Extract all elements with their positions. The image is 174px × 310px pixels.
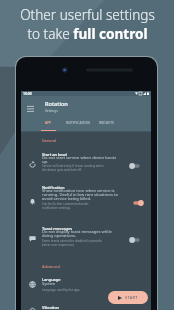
staticText: NOTIFICATION	[66, 121, 90, 125]
staticText: System	[42, 281, 56, 286]
button[interactable]: START	[108, 291, 148, 304]
staticText: Service will start only if it was runnin…	[42, 164, 104, 172]
button[interactable]	[22, 182, 150, 214]
button[interactable]: WIDGETS	[92, 121, 121, 132]
staticText: Other userful settings	[20, 5, 155, 24]
staticText: General	[42, 138, 57, 143]
staticText: Advanced	[42, 264, 60, 269]
button[interactable]: Open navigation menu	[24, 102, 36, 114]
button[interactable]: NOTIFICATION	[63, 121, 92, 132]
staticText: Notification	[42, 185, 65, 190]
staticText: WIDGETS	[99, 121, 114, 125]
staticText: APP	[45, 121, 52, 125]
button[interactable]	[22, 223, 150, 250]
staticText: to take full control	[27, 24, 148, 43]
button[interactable]	[22, 149, 150, 176]
staticText: Show notification icon when service is r…	[42, 188, 120, 201]
staticText: Language	[42, 277, 61, 282]
button[interactable]	[22, 274, 150, 296]
button[interactable]: Toggle setting	[129, 235, 143, 244]
staticText: Do not display toast messages while doin…	[42, 229, 120, 238]
staticText: Some toasts cannot be disabled to provid…	[42, 239, 104, 247]
staticText: 10:00	[23, 91, 32, 96]
staticText: Start an boot	[42, 152, 68, 157]
staticText: START	[125, 295, 138, 300]
staticText: Can be further customised under notifica…	[42, 202, 104, 210]
staticText: Toast messages	[42, 226, 73, 231]
button[interactable]	[22, 301, 150, 310]
button[interactable]: Toggle setting	[129, 198, 143, 207]
staticText: Language used by the app.	[42, 288, 81, 292]
staticText: Do not start service when device boots u…	[42, 155, 120, 164]
staticText: Vibration	[42, 305, 60, 310]
staticText: Settings	[45, 108, 58, 113]
button[interactable]: APP	[34, 121, 63, 132]
button[interactable]: Toggle setting	[129, 161, 143, 170]
staticText: Rotation	[45, 100, 68, 108]
